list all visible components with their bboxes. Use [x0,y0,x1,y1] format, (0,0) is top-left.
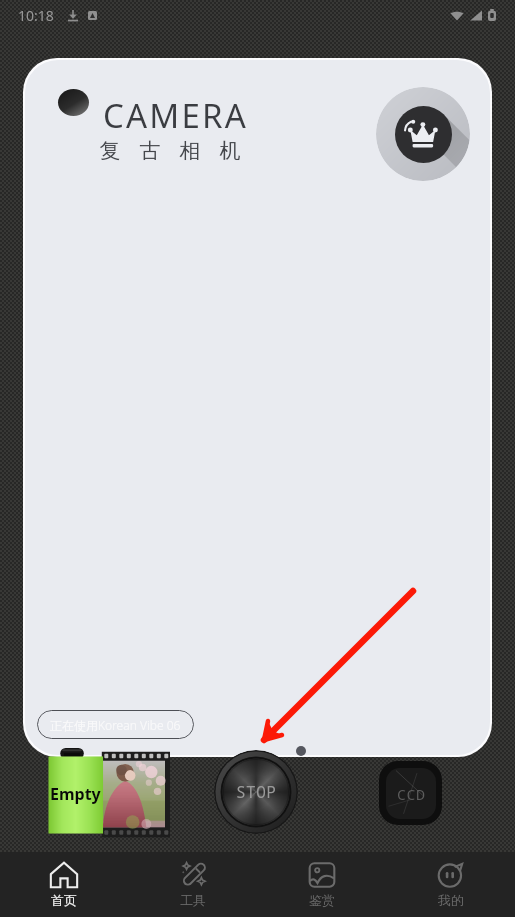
staticText: 正在使用Korean Vibe 06 [50,717,181,733]
button[interactable]: 正在使用Korean Vibe 06 [37,710,194,739]
staticText: 鉴赏 [309,892,335,908]
staticText: 10:18 [18,6,54,25]
button[interactable]: 首页 [0,852,128,917]
staticText: 复古相机 [90,138,250,164]
staticText: 首页 [51,892,77,908]
staticText: 我的 [438,892,464,908]
button[interactable]: 工具 [128,852,257,917]
staticText: 工具 [180,892,206,908]
button[interactable]: VIP [376,87,470,181]
button[interactable]: 我的 [386,852,515,917]
staticText: CAMERA [103,93,249,138]
staticText: STOP [236,781,277,803]
button[interactable]: CCD mode [379,761,442,825]
button[interactable]: 鉴赏 [257,852,386,917]
button[interactable]: Stop [214,750,298,834]
staticText: Empty [50,783,101,805]
staticText: CCD [397,784,426,804]
